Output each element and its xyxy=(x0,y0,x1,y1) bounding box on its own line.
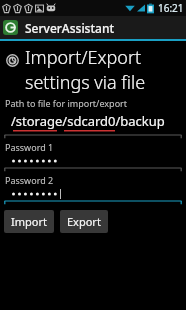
button[interactable]: ServerAssistant xyxy=(0,16,186,39)
button[interactable] xyxy=(4,188,182,204)
staticText: /storage/sdcard0/backup xyxy=(11,112,165,130)
staticText: 16:21 xyxy=(158,1,184,15)
button[interactable] xyxy=(4,155,182,171)
staticText: Password 2 xyxy=(5,174,54,186)
button[interactable]: Import xyxy=(4,210,54,233)
staticText: ServerAssistant xyxy=(25,20,115,36)
staticText: Path to file for import/export xyxy=(5,97,128,109)
button[interactable]: Export xyxy=(60,210,108,233)
staticText: Import xyxy=(11,214,47,229)
staticText: Password 1 xyxy=(5,141,54,153)
button[interactable]: /storage/sdcard0/backup xyxy=(4,112,182,138)
staticText: settings via file xyxy=(25,70,146,95)
staticText: Import/Export xyxy=(25,45,142,70)
staticText: Export xyxy=(67,214,101,229)
